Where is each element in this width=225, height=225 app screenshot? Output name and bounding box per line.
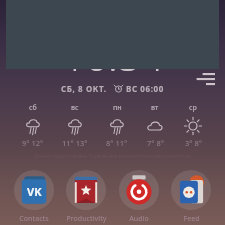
other: Feed (177, 176, 206, 205)
other: Audio (124, 175, 154, 205)
staticText: Audio (129, 214, 149, 224)
button[interactable]: Menu (196, 71, 216, 87)
staticText: 10:54 (62, 28, 164, 82)
staticText: VK (27, 184, 42, 199)
staticText: сб (29, 103, 37, 113)
button[interactable]: сб (4, 103, 221, 148)
staticText: Contacts (19, 214, 49, 224)
staticText: ВС 06:00 (126, 83, 164, 94)
other: Productivity (72, 176, 100, 204)
staticText: вт (151, 103, 159, 113)
staticText: 3° 8° (185, 138, 202, 148)
button[interactable]: Feed (167, 170, 215, 224)
staticText: Feed (183, 214, 200, 224)
staticText: Productivity (66, 214, 107, 224)
staticText: СБ, 8 ОКТ. (61, 83, 107, 94)
staticText: ср (189, 103, 197, 113)
staticText: 9° 12° (22, 138, 44, 148)
staticText: пн (113, 103, 122, 113)
button[interactable]: VK (10, 170, 58, 224)
other: VK (19, 175, 49, 205)
staticText: 8° 11° (106, 138, 128, 148)
button[interactable]: Audio (115, 170, 163, 224)
staticText: 11° 13° (62, 138, 88, 148)
button[interactable]: СБ, 8 ОКТ. (61, 83, 164, 94)
button[interactable]: Productivity (62, 170, 110, 224)
staticText: вс (71, 103, 79, 113)
staticText: 7° 8° (147, 138, 164, 148)
